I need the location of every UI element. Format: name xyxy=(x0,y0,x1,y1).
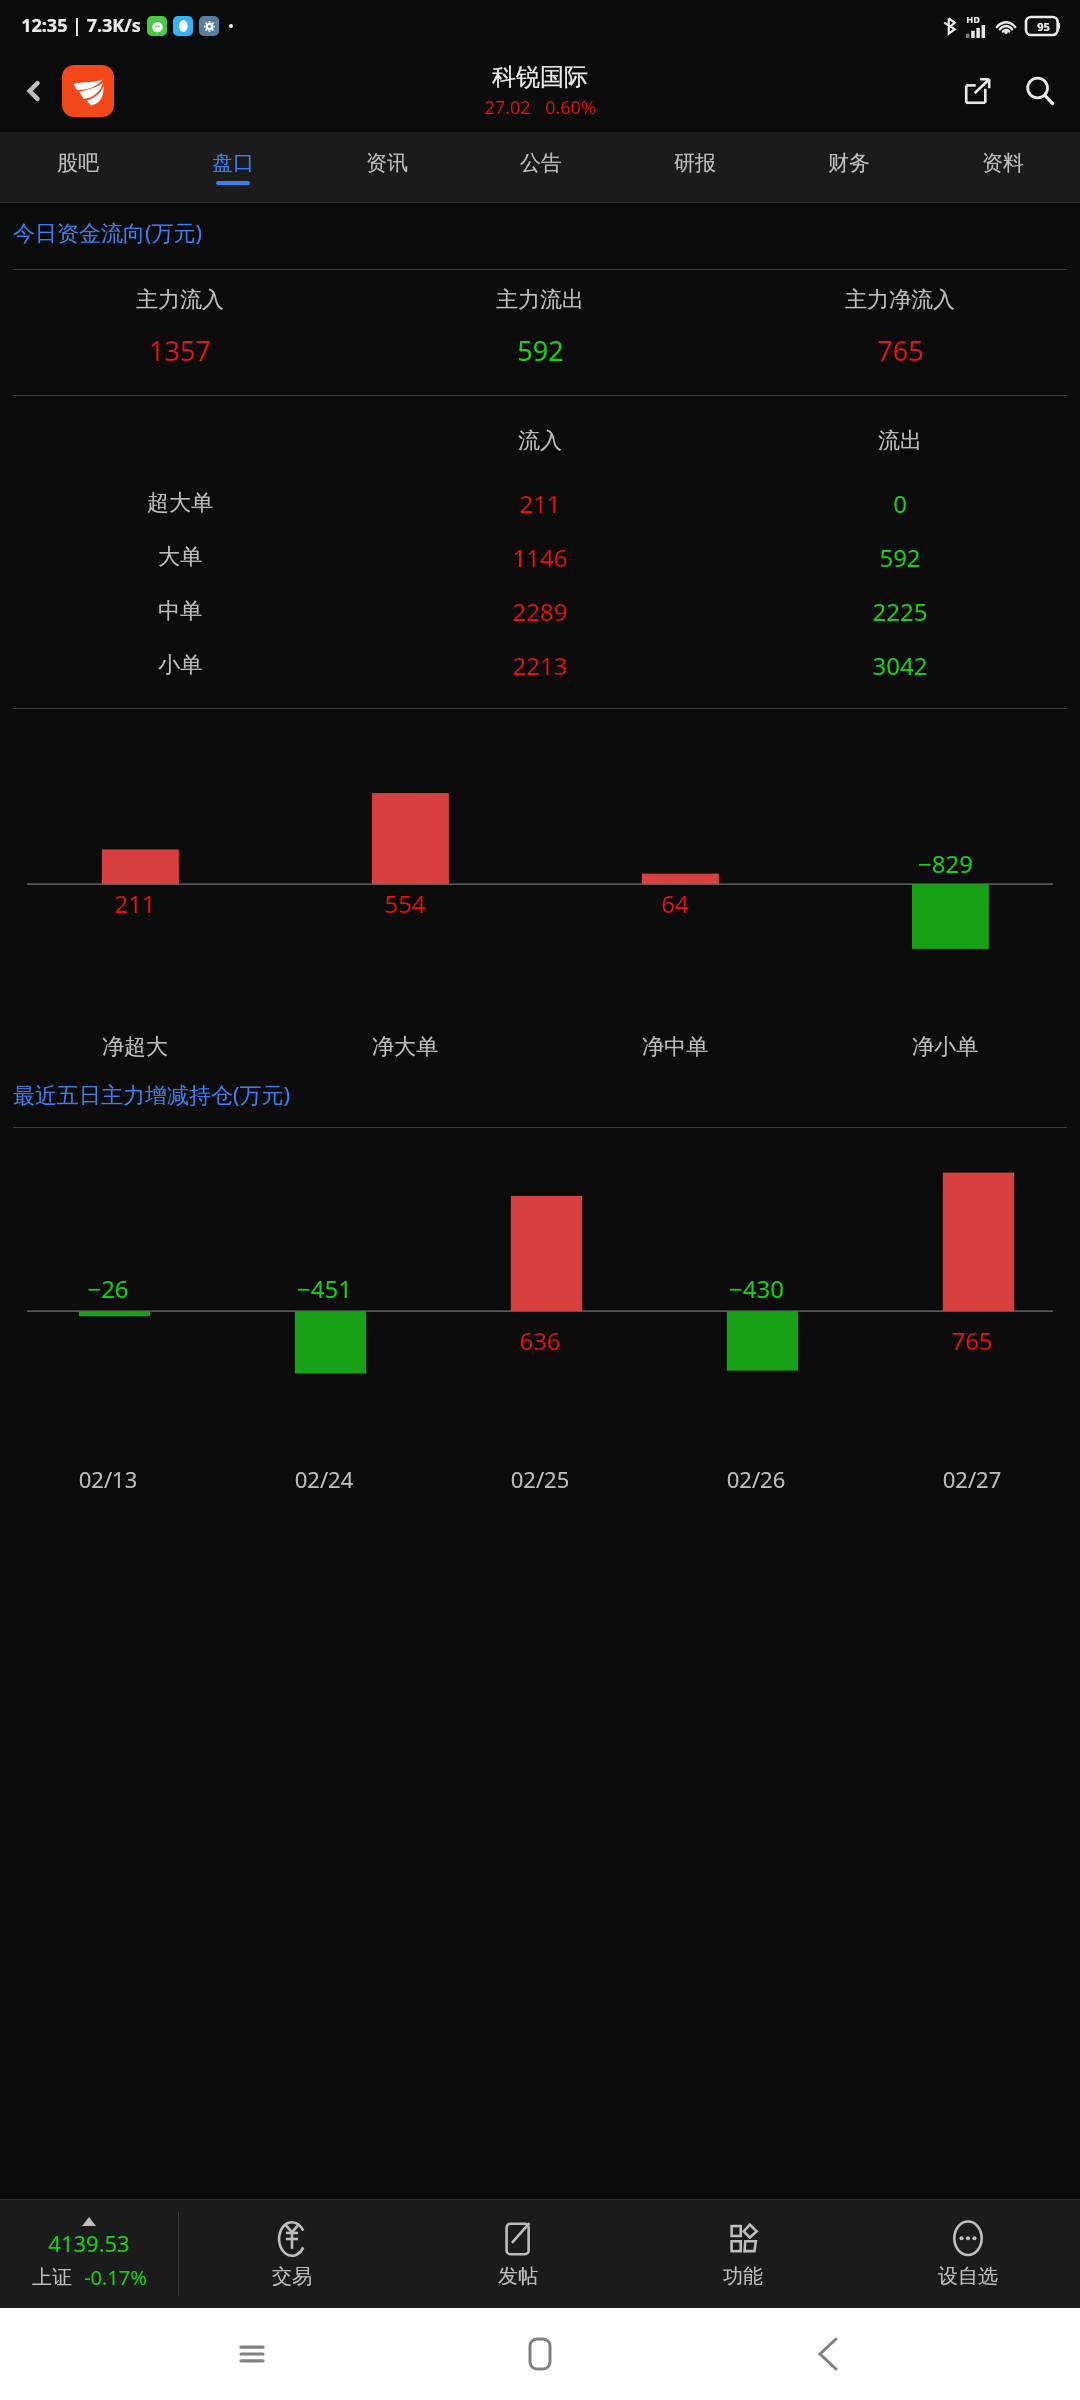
staticText: 02/25 xyxy=(432,1464,648,1494)
staticText: −451 xyxy=(297,1272,352,1305)
staticText: 1146 xyxy=(360,541,720,574)
staticText: 小单 xyxy=(0,651,360,679)
staticText: 净大单 xyxy=(270,1033,540,1061)
staticText: 765 xyxy=(951,1324,993,1357)
button[interactable]: 超大单 xyxy=(0,476,1080,530)
button[interactable]: 财务 xyxy=(772,132,926,202)
staticText: 2225 xyxy=(720,595,1080,628)
staticText: 流出 xyxy=(720,427,1080,455)
button[interactable]: 资料 xyxy=(926,132,1080,202)
staticText: 功能 xyxy=(723,2264,763,2289)
staticText: 今日资金流向(万元) xyxy=(13,217,203,247)
button[interactable]: 股吧 xyxy=(0,132,155,202)
staticText: 02/13 xyxy=(0,1464,216,1494)
staticText: 2213 xyxy=(360,649,720,682)
staticText: 净小单 xyxy=(810,1033,1080,1061)
staticText: 765 xyxy=(877,332,924,369)
button[interactable]: Back xyxy=(8,65,60,117)
staticText: 中单 xyxy=(0,597,360,625)
staticText: 设自选 xyxy=(938,2264,998,2289)
button[interactable]: 交易 xyxy=(179,2200,405,2308)
staticText: -0.17% xyxy=(84,2264,147,2291)
staticText: 上证 xyxy=(32,2265,72,2290)
staticText: 592 xyxy=(517,332,564,369)
staticText: 636 xyxy=(519,1324,561,1357)
button[interactable]: 小单 xyxy=(0,638,1080,692)
staticText: 02/24 xyxy=(216,1464,432,1494)
staticText: 主力流入 xyxy=(136,286,224,314)
staticText: 发帖 xyxy=(498,2264,538,2289)
staticText: 1357 xyxy=(149,332,211,369)
staticText: 科锐国际 xyxy=(492,62,588,92)
staticText: 净超大 xyxy=(0,1033,270,1061)
button[interactable]: 功能 xyxy=(630,2200,855,2308)
staticText: HD xyxy=(966,13,980,25)
button[interactable]: 公告 xyxy=(464,132,618,202)
staticText: 最近五日主力增减持仓(万元) xyxy=(13,1079,291,1109)
staticText: 554 xyxy=(384,887,426,920)
button[interactable]: 盘口 xyxy=(155,132,310,202)
staticText: 净中单 xyxy=(540,1033,810,1061)
staticText: 大单 xyxy=(0,543,360,571)
staticText: 4139.53 xyxy=(48,2228,130,2258)
staticText: 研报 xyxy=(674,150,716,176)
staticText: 交易 xyxy=(272,2264,312,2289)
button[interactable]: Home xyxy=(504,2318,576,2390)
button[interactable]: 大单 xyxy=(0,530,1080,584)
staticText: −829 xyxy=(918,847,973,880)
staticText: 95 xyxy=(1037,19,1050,34)
staticText: 02/27 xyxy=(864,1464,1080,1494)
staticText: 超大单 xyxy=(0,489,360,517)
button[interactable]: Share xyxy=(952,65,1004,117)
button[interactable]: 4139.53 xyxy=(0,2200,178,2308)
button[interactable]: Recents xyxy=(216,2318,288,2390)
staticText: 2289 xyxy=(360,595,720,628)
staticText: 盘口 xyxy=(212,150,254,176)
staticText: 主力流出 xyxy=(496,286,584,314)
staticText: 3042 xyxy=(720,649,1080,682)
button[interactable]: 发帖 xyxy=(405,2200,630,2308)
button[interactable]: 资讯 xyxy=(310,132,464,202)
button[interactable]: Search xyxy=(1014,65,1066,117)
staticText: 02/26 xyxy=(648,1464,864,1494)
staticText: 27.02 xyxy=(484,95,531,120)
button[interactable]: 设自选 xyxy=(855,2200,1080,2308)
staticText: 财务 xyxy=(828,150,870,176)
button[interactable]: App logo xyxy=(62,65,114,117)
button[interactable]: 中单 xyxy=(0,584,1080,638)
staticText: 公告 xyxy=(520,150,562,176)
staticText: 64 xyxy=(661,887,689,920)
staticText: 12:35 | 7.3K/s xyxy=(21,13,141,38)
button[interactable]: Back xyxy=(792,2318,864,2390)
staticText: 主力净流入 xyxy=(845,286,955,314)
staticText: 592 xyxy=(720,541,1080,574)
staticText: 资料 xyxy=(982,150,1024,176)
staticText: 0.60% xyxy=(545,95,596,120)
staticText: −26 xyxy=(87,1272,129,1305)
button[interactable]: 研报 xyxy=(618,132,772,202)
staticText: 211 xyxy=(114,887,156,920)
staticText: 211 xyxy=(360,487,720,520)
staticText: −430 xyxy=(729,1272,784,1305)
staticText: 资讯 xyxy=(366,150,408,176)
staticText: 0 xyxy=(720,487,1080,520)
staticText: 流入 xyxy=(360,427,720,455)
staticText: 股吧 xyxy=(57,150,99,176)
